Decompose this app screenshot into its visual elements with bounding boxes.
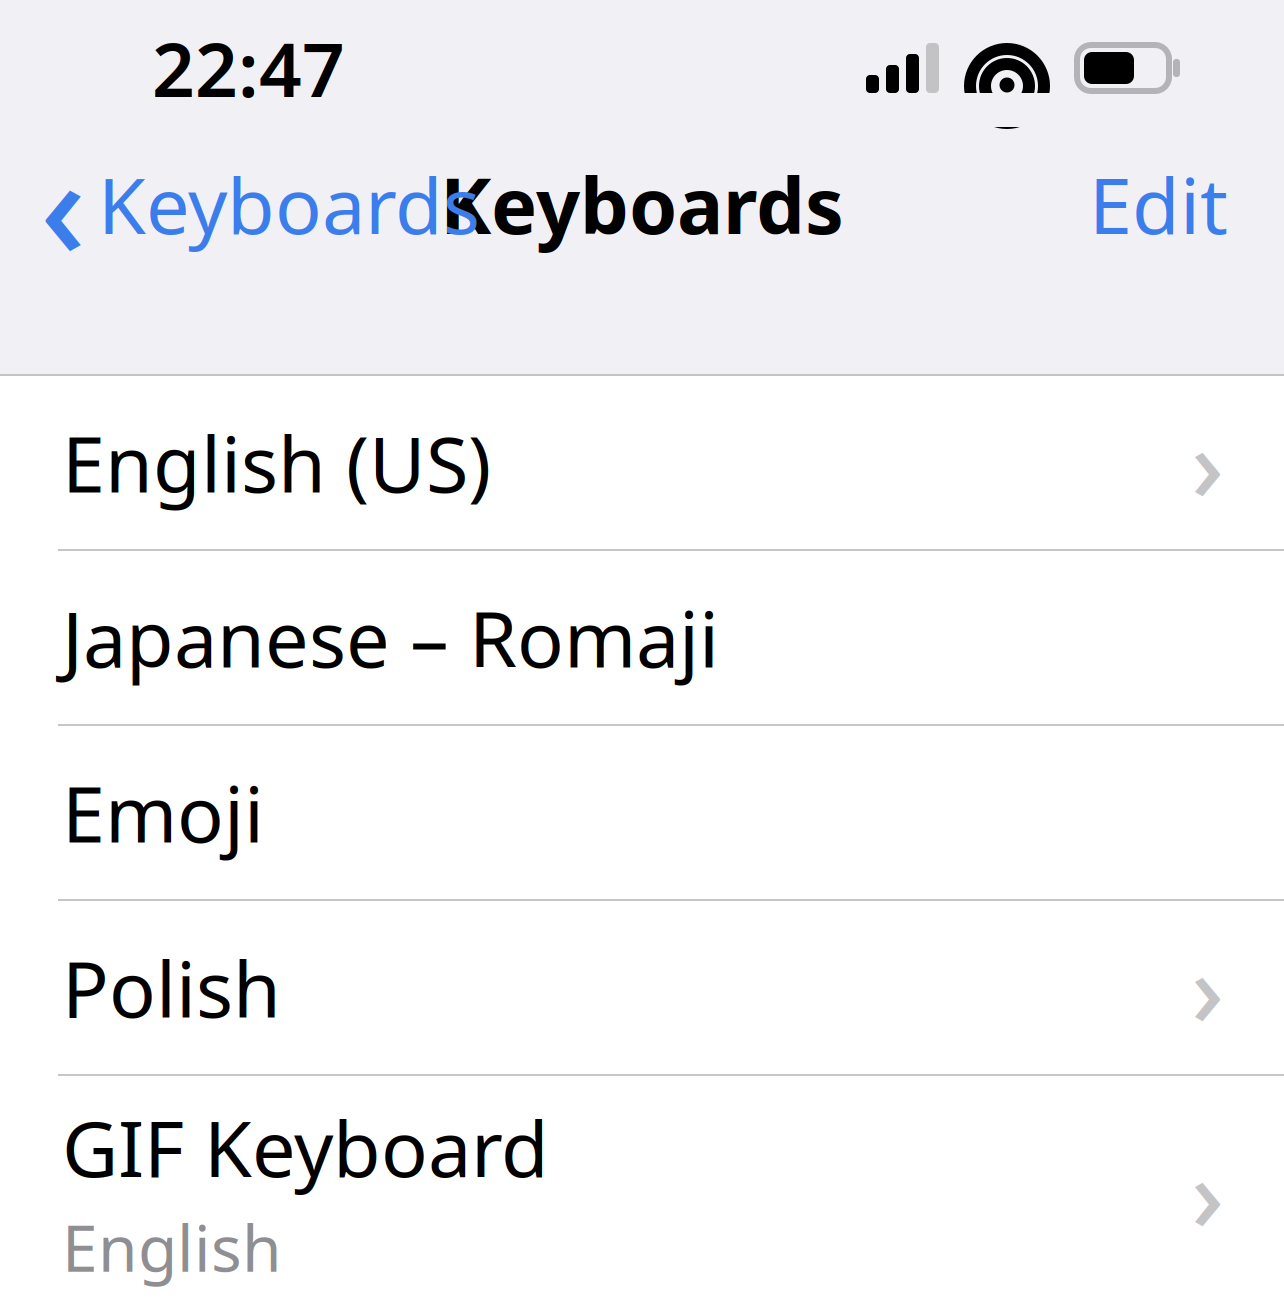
staticText: English (US) xyxy=(62,411,491,514)
staticText: Keyboards xyxy=(98,153,480,255)
button[interactable]: Polish xyxy=(0,901,1284,1074)
button[interactable]: Edit xyxy=(1089,139,1284,269)
button[interactable]: English (US) xyxy=(0,376,1284,549)
staticText: › xyxy=(1191,920,1224,1055)
staticText: › xyxy=(1191,395,1224,530)
staticText: › xyxy=(1191,1125,1224,1260)
staticText: Emoji xyxy=(62,761,264,864)
staticText: Edit xyxy=(1089,153,1228,255)
button[interactable]: Emoji xyxy=(0,726,1284,899)
staticText: Japanese – Romaji xyxy=(62,586,719,689)
button[interactable]: Japanese – Romaji xyxy=(0,551,1284,724)
staticText: ‹ xyxy=(40,110,86,298)
staticText: Keyboards xyxy=(440,153,844,255)
staticText: 22:47 xyxy=(152,18,345,118)
button[interactable]: GIF Keyboard xyxy=(0,1076,1284,1307)
staticText: GIF Keyboard xyxy=(62,1096,549,1198)
staticText: English xyxy=(62,1204,282,1289)
staticText: Polish xyxy=(62,936,281,1039)
button[interactable]: ‹ xyxy=(0,96,480,312)
